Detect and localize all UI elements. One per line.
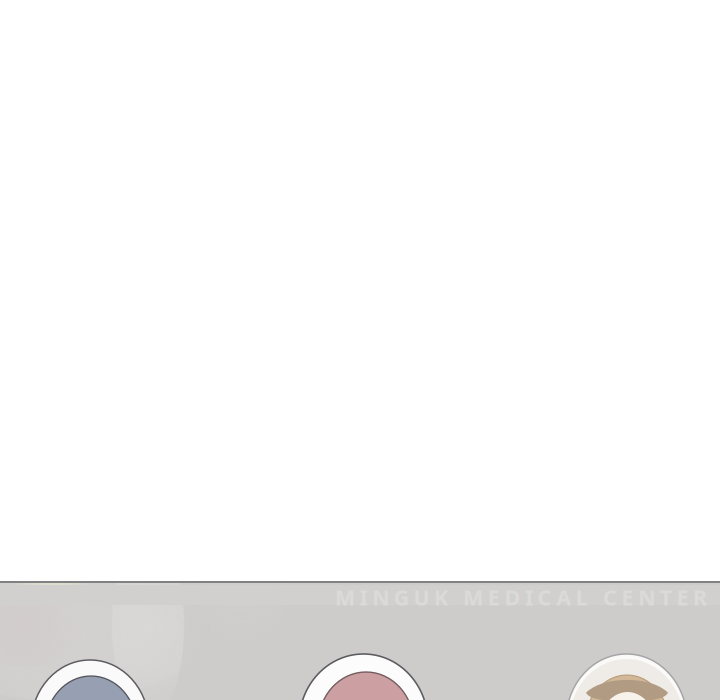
staticText: MINGUK MEDICAL CENTER [335, 583, 707, 611]
